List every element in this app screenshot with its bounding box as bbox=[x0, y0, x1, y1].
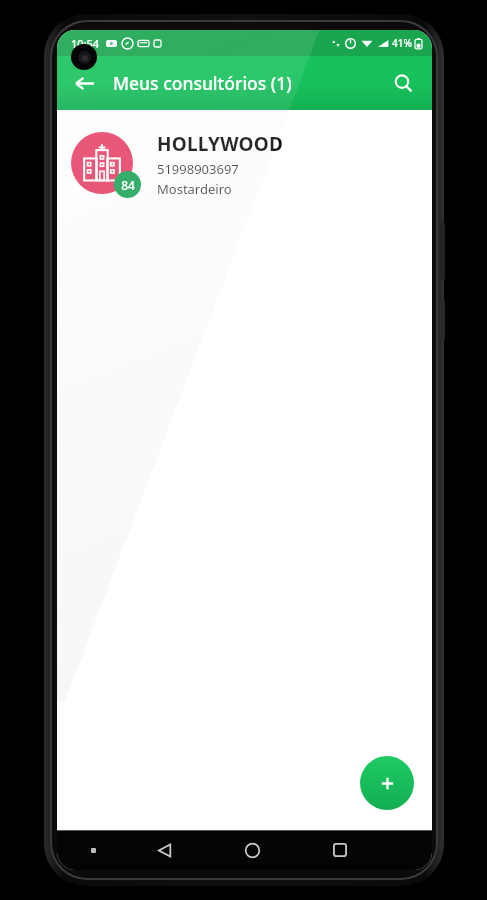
button[interactable]: Search bbox=[382, 62, 424, 104]
button[interactable]: Recent apps bbox=[296, 830, 384, 870]
staticText: HOLLYWOOD bbox=[157, 131, 284, 157]
button[interactable]: Add bbox=[360, 756, 414, 810]
staticText: 84 bbox=[121, 177, 135, 193]
button[interactable]: 84 bbox=[57, 110, 432, 218]
staticText: 51998903697 bbox=[157, 160, 239, 178]
button[interactable]: Home bbox=[208, 830, 296, 870]
button[interactable]: Keyboard indicator bbox=[65, 830, 121, 870]
staticText: Meus consultórios (1) bbox=[113, 71, 292, 95]
button[interactable]: Back bbox=[63, 62, 105, 104]
staticText: 10:54 bbox=[71, 36, 100, 51]
staticText: Mostardeiro bbox=[157, 180, 232, 198]
staticText: 41% bbox=[392, 36, 412, 50]
button[interactable]: Back bbox=[121, 830, 208, 870]
